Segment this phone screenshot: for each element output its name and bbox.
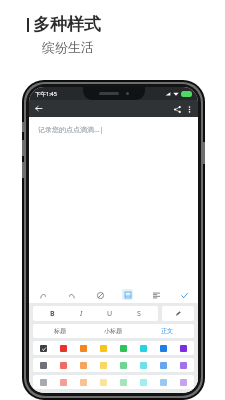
button[interactable]: Colour 8 [178,377,189,388]
button[interactable]: Align [150,289,162,301]
staticText: U [107,309,113,319]
button[interactable]: Colour 3 [78,343,89,354]
staticText: 标题 [54,327,66,335]
button[interactable]: Colour 5 [118,343,129,354]
button[interactable]: Colour 7 [158,360,169,371]
button[interactable]: Colour 6 [138,377,149,388]
button[interactable]: Done [178,289,190,301]
button[interactable]: B [42,307,62,321]
button[interactable]: Colour 6 [138,343,149,354]
button[interactable]: I [71,307,91,321]
button[interactable]: Colour 4 [98,360,109,371]
button[interactable]: Colour 5 [118,377,129,388]
button[interactable]: 正文 [140,324,194,338]
staticText: 缤纷生活 [42,39,94,55]
button[interactable]: Colour 6 [138,360,149,371]
staticText: 多种样式 [33,14,101,35]
button[interactable]: Colour 3 [78,360,89,371]
staticText: 小标题 [104,327,122,335]
staticText: B [50,309,55,319]
button[interactable]: Colour 2 [58,360,69,371]
button[interactable]: Undo [37,289,49,301]
button[interactable]: Colour 3 [78,377,89,388]
button[interactable]: S [129,307,149,321]
button[interactable]: 小标题 [86,324,140,338]
button[interactable]: Colour 1 [38,377,49,388]
button[interactable]: Clear formatting [94,289,106,301]
button[interactable]: Back [33,103,44,114]
button[interactable]: Colour 7 [158,343,169,354]
staticText: 记录您的点点滴滴...| [38,125,104,135]
button[interactable]: 标题 [33,324,86,338]
button[interactable]: Share [171,103,183,115]
button[interactable]: Redo [65,289,77,301]
button[interactable]: Colour 5 [118,360,129,371]
button[interactable]: Colour 2 [58,343,69,354]
staticText: S [137,309,141,319]
button[interactable]: Colour 4 [98,343,109,354]
button[interactable]: Colour 8 [178,360,189,371]
button[interactable]: Highlight pen [162,306,194,321]
button[interactable]: Colour 1 [38,360,49,371]
button[interactable]: Colour 2 [58,377,69,388]
staticText: 正文 [161,327,173,335]
staticText: I [80,309,83,319]
button[interactable]: Colour 7 [158,377,169,388]
button[interactable]: More options [183,103,195,115]
staticText: 下午1:45 [35,90,57,98]
button[interactable]: Colour 1 [38,343,49,354]
button[interactable]: U [100,307,120,321]
button[interactable]: Insert image [122,289,133,300]
button[interactable]: Colour 4 [98,377,109,388]
button[interactable]: Colour 8 [178,343,189,354]
